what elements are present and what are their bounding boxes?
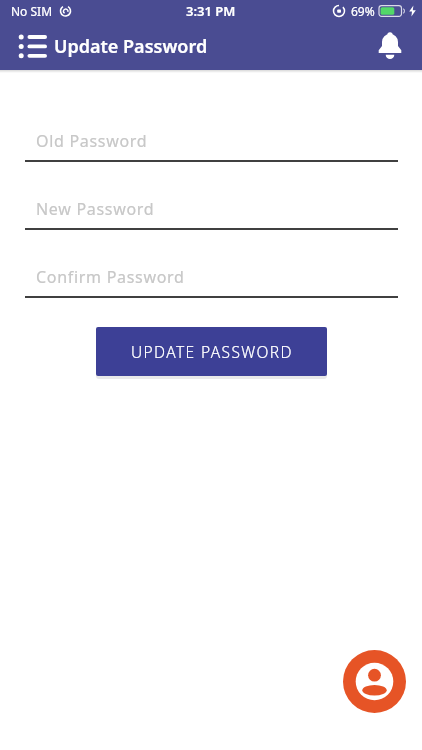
button[interactable]: UPDATE PASSWORD bbox=[96, 327, 327, 376]
staticText: New Password bbox=[36, 198, 155, 220]
staticText: No SIM bbox=[11, 3, 53, 19]
button[interactable] bbox=[343, 650, 406, 713]
button[interactable] bbox=[371, 27, 409, 65]
staticText: 69% bbox=[351, 3, 375, 19]
staticText: Update Password bbox=[54, 34, 208, 59]
staticText: Confirm Password bbox=[36, 266, 185, 288]
staticText: 3:31 PM bbox=[186, 2, 236, 20]
staticText: UPDATE PASSWORD bbox=[131, 341, 293, 362]
button[interactable] bbox=[12, 25, 54, 67]
staticText: Old Password bbox=[36, 130, 148, 152]
